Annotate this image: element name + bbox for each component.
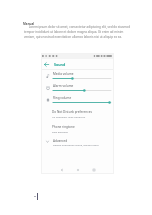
staticText: Lorem ipsum dolor sit amet, consectetur … [24,25,130,39]
staticText: Sound [54,62,66,67]
button[interactable]: Ring volume [41,94,114,106]
staticText: Manual [23,22,35,26]
staticText: Media volume [53,72,74,76]
button[interactable]: Phone ringtone [41,121,114,136]
button[interactable]: Back [58,166,65,173]
staticText: Phone ringtone [52,125,75,129]
button[interactable]: Back [41,59,52,69]
button[interactable]: Media volume [41,70,114,82]
staticText: Advanced [53,139,68,143]
staticText: Flow Ringtone [52,130,68,133]
staticText: Ring volume [53,96,72,100]
button[interactable]: Recents [90,166,97,173]
button[interactable]: Advanced [41,136,114,151]
button[interactable]: Home [74,166,81,173]
staticText: Do Not Disturb preferences [52,110,92,114]
staticText: Default notification sound, Default alar… [53,143,99,146]
button[interactable]: Do Not Disturb preferences [41,106,114,121]
staticText: Alarm volume [53,84,74,88]
staticText: No automatic rules turned on [52,115,86,118]
button[interactable]: Alarm volume [41,82,114,94]
